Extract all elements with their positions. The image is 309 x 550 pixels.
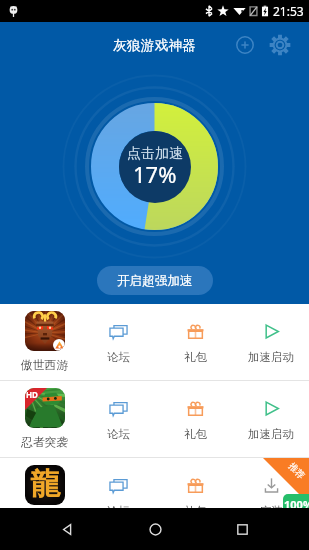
staticText: 论坛 xyxy=(107,350,130,364)
staticText: 礼包 xyxy=(184,504,207,518)
button[interactable]: 龍 xyxy=(10,458,80,534)
button[interactable]: 论坛 xyxy=(80,458,157,534)
staticText: 加速启动 xyxy=(248,427,294,441)
staticText: 忍者突袭 xyxy=(21,435,69,450)
staticText: 点击加速 xyxy=(127,145,183,163)
button[interactable]: 傲世西游 xyxy=(10,304,80,380)
staticText: 礼包 xyxy=(184,350,207,364)
staticText: 礼包 xyxy=(184,427,207,441)
button[interactable]: 礼包 xyxy=(157,458,233,534)
button[interactable]: 安装 xyxy=(233,458,309,534)
button[interactable]: 点击加速 xyxy=(119,131,191,203)
button[interactable]: Settings xyxy=(264,29,296,61)
staticText: 17% xyxy=(133,159,177,189)
staticText: 安装 xyxy=(260,504,283,518)
staticText: 开启超强加速 xyxy=(117,273,193,289)
button[interactable]: 100% xyxy=(283,494,309,514)
staticText: 龍 xyxy=(30,465,60,503)
button[interactable]: 礼包 xyxy=(157,304,233,380)
staticText: 加速启动 xyxy=(248,350,294,364)
staticText: 论坛 xyxy=(107,504,130,518)
button[interactable]: 加速启动 xyxy=(233,304,309,380)
staticText: 100% xyxy=(284,497,309,512)
button[interactable]: 论坛 xyxy=(80,304,157,380)
staticText: 灰狼游戏神器 xyxy=(113,37,196,54)
staticText: 21:53 xyxy=(273,3,304,19)
staticText: 热血江湖 xyxy=(21,512,69,527)
button[interactable]: 开启超强加速 xyxy=(97,266,213,295)
button[interactable]: 加速启动 xyxy=(233,381,309,457)
button[interactable]: Add xyxy=(229,29,261,61)
button[interactable]: Recents xyxy=(222,509,262,549)
button[interactable]: Home xyxy=(135,509,175,549)
staticText: 论坛 xyxy=(107,427,130,441)
button[interactable]: 礼包 xyxy=(157,381,233,457)
button[interactable]: 论坛 xyxy=(80,381,157,457)
staticText: 傲世西游 xyxy=(21,358,69,373)
staticText: HD xyxy=(26,389,38,400)
button[interactable]: Back xyxy=(47,509,87,549)
button[interactable]: HD xyxy=(10,381,80,457)
staticText: 推荐 xyxy=(287,460,307,481)
